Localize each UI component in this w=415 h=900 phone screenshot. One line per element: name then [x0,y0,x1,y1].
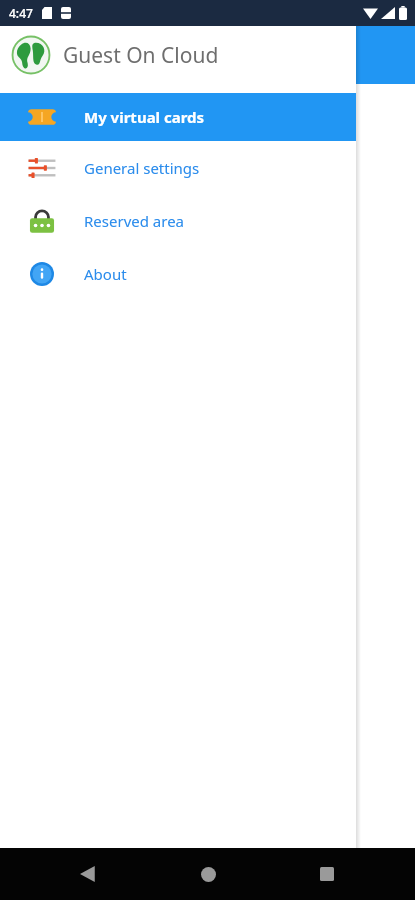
button[interactable]: My virtual cards [0,93,356,141]
staticText: Guest On Cloud [63,41,219,70]
staticText: Reserved area [84,211,185,231]
button[interactable]: Back [68,854,108,894]
staticText: 4:47 [9,5,33,21]
button[interactable]: Home [188,854,228,894]
button[interactable]: Reserved area [0,194,356,247]
staticText: About [84,264,127,284]
staticText: General settings [84,158,200,178]
staticText: My virtual cards [84,107,205,127]
button[interactable]: Recent apps [307,854,347,894]
button[interactable]: General settings [0,141,356,194]
button[interactable]: About [0,247,356,300]
